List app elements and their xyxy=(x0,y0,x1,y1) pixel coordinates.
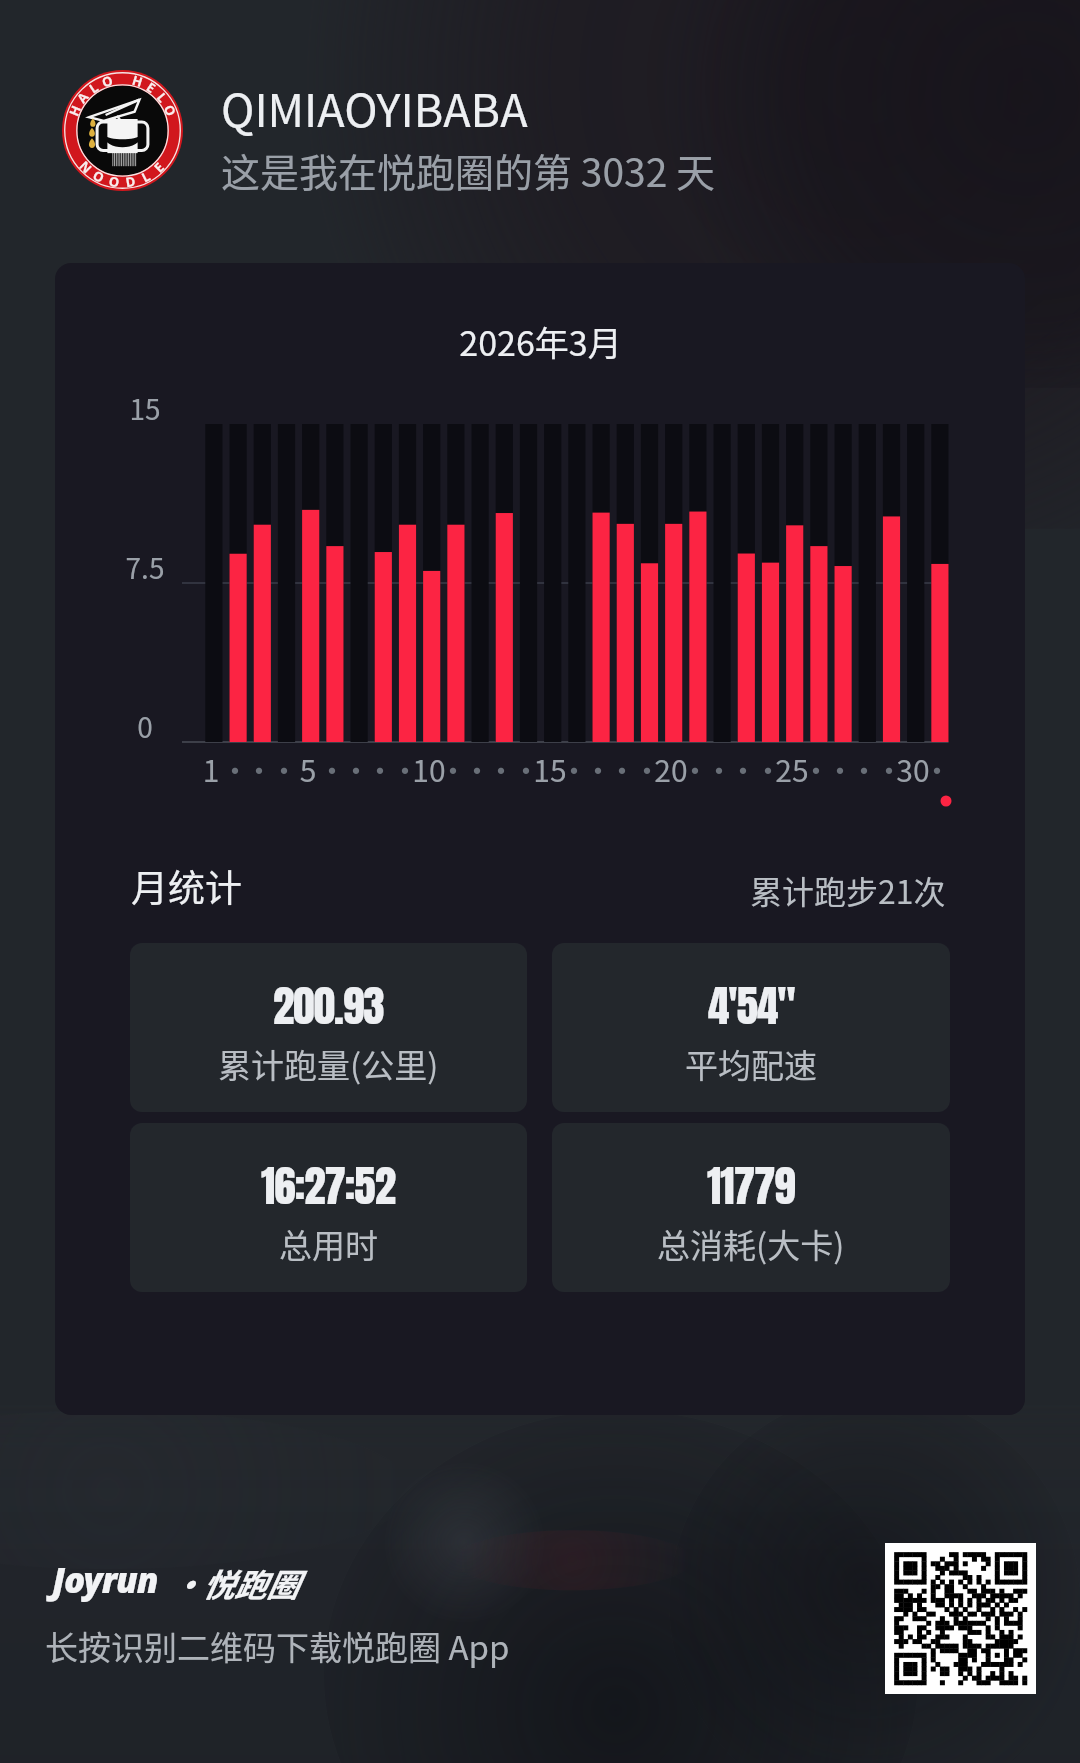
staticText: · xyxy=(786,747,846,790)
staticText: · xyxy=(859,747,919,790)
staticText: · xyxy=(229,747,289,790)
staticText: · xyxy=(907,747,967,790)
staticText: 2026年3月 xyxy=(459,317,622,366)
button[interactable]: 4'54" xyxy=(552,943,950,1112)
staticText: Joyrun xyxy=(52,1556,158,1604)
button[interactable]: 11779 xyxy=(552,1123,950,1292)
staticText: 累计跑量(公里) xyxy=(218,1040,439,1088)
staticText: · xyxy=(617,747,677,790)
staticText: 总消耗(大卡) xyxy=(657,1220,845,1268)
staticText: · xyxy=(447,747,507,790)
staticText: 200.93 xyxy=(273,973,384,1038)
staticText: · xyxy=(254,747,314,790)
staticText: ·悦跑圈 xyxy=(170,1560,299,1606)
staticText: · xyxy=(713,747,773,790)
staticText: 15 xyxy=(85,388,205,429)
staticText: 平均配速 xyxy=(685,1040,817,1088)
staticText: 1 xyxy=(181,747,241,790)
staticText: · xyxy=(471,747,531,790)
staticText: · xyxy=(302,747,362,790)
staticText: · xyxy=(375,747,435,790)
staticText: QIMIAOYIBABA xyxy=(221,75,528,140)
staticText: · xyxy=(544,747,604,790)
staticText: · xyxy=(689,747,749,790)
staticText: · xyxy=(592,747,652,790)
staticText: · xyxy=(496,747,556,790)
button[interactable]: 200.93 xyxy=(130,943,527,1112)
staticText: 11779 xyxy=(707,1153,795,1218)
staticText: · xyxy=(665,747,725,790)
staticText: 30 xyxy=(883,747,943,790)
staticText: · xyxy=(326,747,386,790)
staticText: 总用时 xyxy=(279,1220,378,1268)
button[interactable]: Download Joyrun app QR code xyxy=(885,1543,1036,1694)
staticText: 0 xyxy=(85,706,205,747)
staticText: · xyxy=(205,747,265,790)
staticText: 长按识别二维码下载悦跑圈 App xyxy=(45,1622,510,1670)
staticText: 这是我在悦跑圈的第 3032 天 xyxy=(221,142,716,198)
staticText: 月统计 xyxy=(131,859,242,913)
staticText: 累计跑步21次 xyxy=(750,867,946,913)
button[interactable]: 16:27:52 xyxy=(130,1123,527,1292)
staticText: · xyxy=(568,747,628,790)
staticText: 20 xyxy=(641,747,701,790)
staticText: · xyxy=(810,747,870,790)
staticText: 10 xyxy=(399,747,459,790)
staticText: 16:27:52 xyxy=(261,1153,396,1218)
staticText: · xyxy=(423,747,483,790)
staticText: 15 xyxy=(520,747,580,790)
staticText: · xyxy=(738,747,798,790)
staticText: · xyxy=(834,747,894,790)
staticText: 7.5 xyxy=(85,547,205,588)
staticText: 4'54" xyxy=(708,973,795,1038)
staticText: 25 xyxy=(762,747,822,790)
staticText: · xyxy=(350,747,410,790)
staticText: 5 xyxy=(278,747,338,790)
